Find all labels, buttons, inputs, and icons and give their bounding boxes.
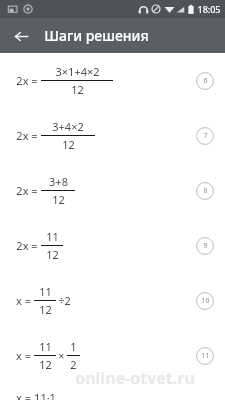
button[interactable]: x = xyxy=(0,328,225,383)
staticText: 1 xyxy=(70,339,77,354)
staticText: 12 xyxy=(39,357,52,372)
staticText: 11 xyxy=(201,351,210,361)
staticText: 11·1 xyxy=(34,390,56,400)
staticText: 2 xyxy=(70,357,77,372)
button[interactable]: x = xyxy=(0,273,225,328)
button[interactable]: 7 xyxy=(196,127,214,145)
staticText: 9 xyxy=(203,241,208,251)
staticText: 11 xyxy=(39,339,52,354)
staticText: 10 xyxy=(201,296,210,306)
staticText: 2x = xyxy=(16,73,38,88)
staticText: 12 xyxy=(52,192,65,207)
staticText: 6 xyxy=(203,76,208,86)
staticText: 11 xyxy=(39,284,52,299)
staticText: 12 xyxy=(39,302,52,317)
staticText: 11 xyxy=(46,229,59,244)
staticText: x = xyxy=(16,348,31,363)
staticText: 2x = xyxy=(16,128,38,143)
button[interactable]: x = xyxy=(0,383,225,400)
button[interactable]: 10 xyxy=(196,292,214,310)
button[interactable]: 2x = xyxy=(0,53,225,108)
staticText: 12 xyxy=(46,247,59,262)
staticText: 2x = xyxy=(16,238,38,253)
staticText: 3×1+4×2 xyxy=(55,64,100,79)
button[interactable]: 2x = xyxy=(0,163,225,218)
staticText: 7 xyxy=(203,131,208,141)
staticText: online-otvet.ru xyxy=(75,367,195,389)
button[interactable]: 2x = xyxy=(0,218,225,273)
staticText: 3+8 xyxy=(49,174,68,189)
button[interactable]: 11 xyxy=(196,347,214,365)
staticText: 12 xyxy=(71,82,84,97)
staticText: x = xyxy=(16,293,31,308)
staticText: 12 xyxy=(62,137,75,152)
button[interactable]: 8 xyxy=(196,182,214,200)
button[interactable]: Back xyxy=(9,24,33,48)
staticText: Шаги решения xyxy=(44,26,149,45)
staticText: 18:05 xyxy=(197,3,221,15)
staticText: 2x = xyxy=(16,183,38,198)
button[interactable]: 9 xyxy=(196,237,214,255)
staticText: ÷2 xyxy=(58,293,71,308)
staticText: × xyxy=(58,348,65,363)
button[interactable]: 2x = xyxy=(0,108,225,163)
staticText: x = xyxy=(16,390,31,400)
button[interactable]: 6 xyxy=(196,72,214,90)
staticText: 8 xyxy=(203,186,208,196)
staticText: 3+4×2 xyxy=(52,119,84,134)
